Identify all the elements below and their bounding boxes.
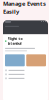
staticText: Flight to Istanbul [7, 36, 22, 46]
staticText: Manage Events [3, 0, 46, 7]
staticText: Easily [3, 7, 19, 15]
